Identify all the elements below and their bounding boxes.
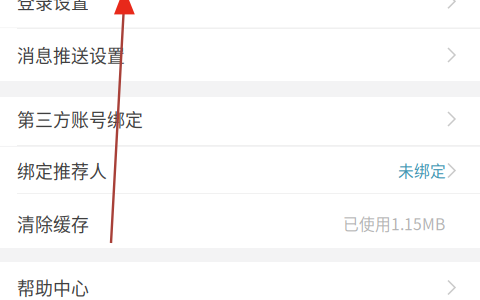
button[interactable]: 第三方账号绑定 [0, 97, 480, 145]
button[interactable]: 帮助中心 [0, 262, 480, 300]
staticText: 绑定推荐人 [17, 158, 107, 183]
staticText: 第三方账号绑定 [17, 106, 143, 132]
staticText: 清除缓存 [17, 211, 89, 236]
staticText: 登录设置 [17, 0, 89, 14]
button[interactable]: 绑定推荐人 [0, 147, 480, 194]
button[interactable]: 登录设置 [0, 0, 480, 27]
staticText: 帮助中心 [17, 275, 89, 300]
staticText: 已使用1.15MB [343, 212, 445, 235]
staticText: 未绑定 [398, 159, 446, 182]
staticText: 消息推送设置 [17, 42, 125, 68]
button[interactable]: 清除缓存 [0, 194, 480, 248]
button[interactable]: 消息推送设置 [0, 29, 480, 81]
